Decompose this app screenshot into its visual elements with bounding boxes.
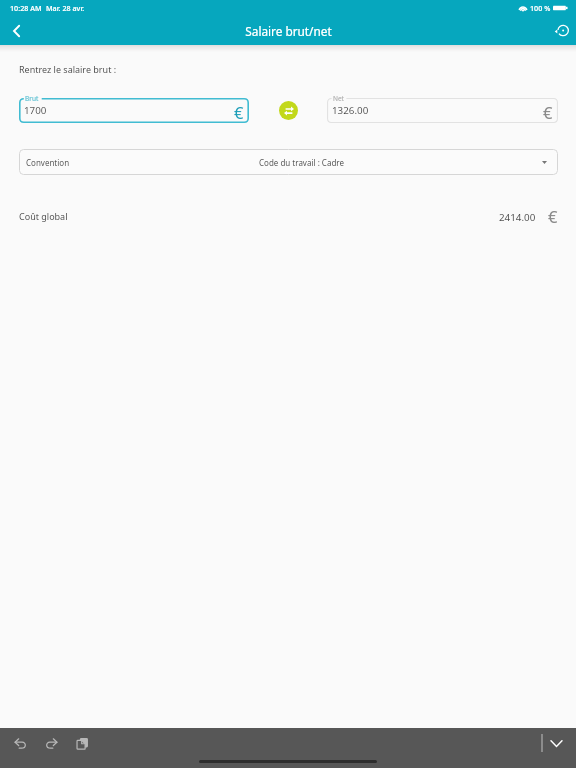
staticText: Coût global <box>19 210 68 222</box>
staticText: Convention <box>26 157 70 168</box>
staticText: € <box>234 101 244 123</box>
button[interactable]: Back <box>0 16 32 45</box>
staticText: € <box>548 205 558 227</box>
staticText: 1700 <box>24 104 47 117</box>
button[interactable]: Hide keyboard <box>545 732 567 754</box>
staticText: Net <box>333 94 344 103</box>
staticText: Code du travail : Cadre <box>259 157 344 168</box>
staticText: Mar. 28 avr. <box>46 3 85 13</box>
staticText: 100 % <box>530 3 551 13</box>
staticText: Salaire brut/net <box>245 23 332 39</box>
staticText: 2414.00 <box>499 211 536 224</box>
staticText: Brut <box>25 94 39 103</box>
button[interactable]: Convention <box>19 149 558 175</box>
button[interactable]: Swap brut and net <box>279 101 298 120</box>
staticText: Rentrez le salaire brut : <box>19 63 117 75</box>
button[interactable]: Redo <box>40 732 62 754</box>
button[interactable]: Undo <box>9 732 31 754</box>
button[interactable]: Clipboard <box>71 732 93 754</box>
staticText: € <box>543 101 553 123</box>
button[interactable]: History <box>548 16 576 45</box>
staticText: 10:28 AM <box>10 3 42 13</box>
staticText: 1326.00 <box>332 104 369 117</box>
